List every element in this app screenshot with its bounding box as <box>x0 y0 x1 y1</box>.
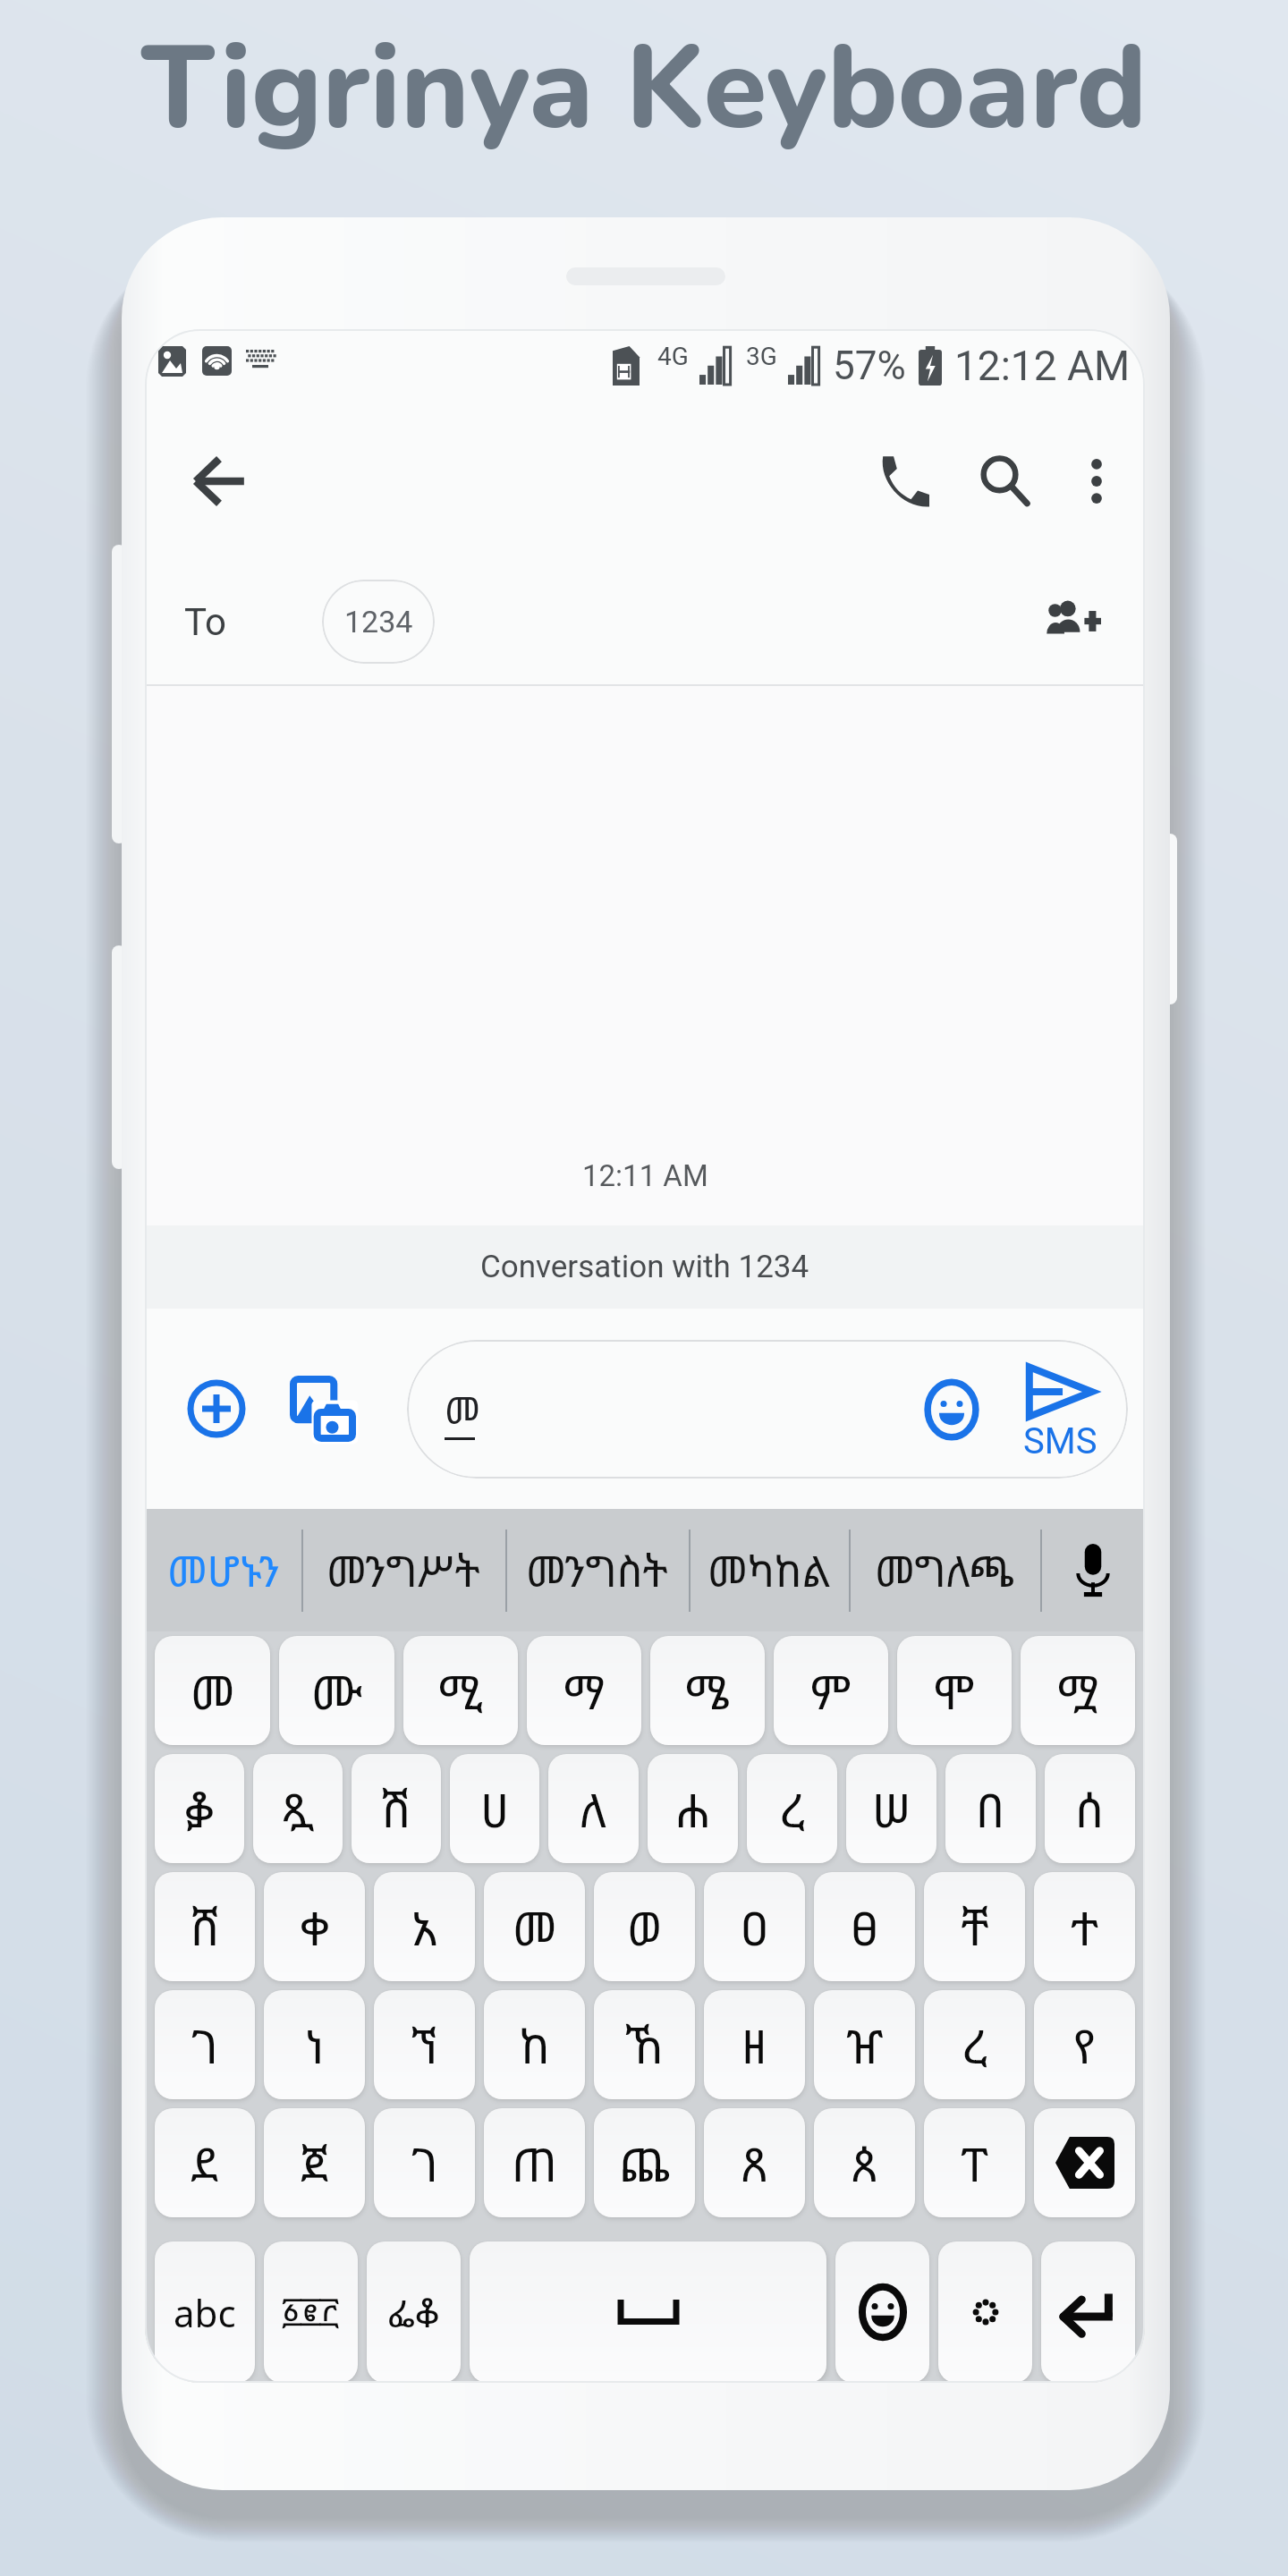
button[interactable]: ሙ <box>279 1636 394 1745</box>
button[interactable]: ሰ <box>1045 1754 1135 1863</box>
staticText: መንግሥት <box>326 1542 480 1599</box>
button[interactable]: ፐ <box>924 2108 1025 2217</box>
staticText: አ <box>411 1895 437 1959</box>
staticText: የ <box>1073 2013 1096 2077</box>
button[interactable]: ጠ <box>484 2108 585 2217</box>
button[interactable]: በ <box>945 1754 1036 1863</box>
button[interactable]: መ <box>155 1636 270 1745</box>
button[interactable]: 1234 <box>322 580 435 664</box>
button[interactable]: ቀ <box>264 1872 365 1981</box>
staticText: ለ <box>580 1777 607 1841</box>
button[interactable]: ቸ <box>924 1872 1025 1981</box>
button[interactable]: Back <box>170 432 268 530</box>
button[interactable]: መንግሥት <box>301 1509 505 1631</box>
button[interactable]: Search <box>955 431 1055 531</box>
button[interactable]: ፀ <box>814 1872 915 1981</box>
button[interactable]: ወ <box>594 1872 695 1981</box>
button[interactable]: Voice input <box>1040 1509 1145 1631</box>
staticText: ሞ <box>934 1659 975 1723</box>
staticText: መሆኑን <box>167 1542 280 1599</box>
button[interactable]: Gallery <box>280 1366 366 1452</box>
button[interactable]: መንግስት <box>505 1509 689 1631</box>
button[interactable]: Enter <box>1041 2241 1135 2383</box>
staticText: ሰ <box>1075 1777 1105 1841</box>
button[interactable]: ለ <box>548 1754 639 1863</box>
staticText: ነ <box>305 2013 325 2077</box>
button[interactable]: ደ <box>155 2108 255 2217</box>
button[interactable]: ኘ <box>374 1990 475 2099</box>
button[interactable]: ጸ <box>704 2108 805 2217</box>
button[interactable]: ኸ <box>594 1990 695 2099</box>
button[interactable]: ሐ <box>648 1754 738 1863</box>
button[interactable]: ዐ <box>704 1872 805 1981</box>
button[interactable]: ም <box>774 1636 888 1745</box>
staticText: ዘ <box>741 2013 767 2077</box>
button[interactable]: Emoji <box>912 1370 991 1449</box>
button[interactable]: ዘ <box>704 1990 805 2099</box>
button[interactable]: ጀ <box>264 2108 365 2217</box>
button[interactable]: Backspace <box>1034 2108 1135 2217</box>
button[interactable]: ገ <box>155 1990 255 2099</box>
button[interactable]: ሀ <box>450 1754 539 1863</box>
staticText: ሀ <box>480 1777 510 1841</box>
button[interactable]: ሜ <box>650 1636 765 1745</box>
staticText: ጠ <box>512 2131 557 2195</box>
button[interactable]: መሆኑን <box>145 1509 301 1631</box>
staticText: To <box>184 600 226 644</box>
button[interactable]: ጿ <box>253 1754 343 1863</box>
button[interactable]: ተ <box>1034 1872 1135 1981</box>
staticText: ቸ <box>961 1895 989 1959</box>
button[interactable]: ፌቆ <box>367 2241 461 2383</box>
button[interactable]: ረ <box>924 1990 1025 2099</box>
button[interactable]: መካከል <box>689 1509 849 1631</box>
button[interactable]: ሽ <box>352 1754 441 1863</box>
button[interactable]: ዠ <box>814 1990 915 2099</box>
button[interactable]: Space <box>470 2241 826 2383</box>
button[interactable]: ጰ <box>814 2108 915 2217</box>
button[interactable]: ሟ <box>1021 1636 1135 1745</box>
button[interactable]: ሸ <box>155 1872 255 1981</box>
staticText: መ <box>191 1659 235 1723</box>
button[interactable]: መግለጫ <box>849 1509 1040 1631</box>
staticText: ወ <box>627 1895 663 1959</box>
staticText: ገ <box>411 2131 438 2195</box>
button[interactable]: የ <box>1034 1990 1135 2099</box>
button[interactable]: abc <box>155 2241 255 2383</box>
button[interactable]: More options <box>1052 436 1141 526</box>
staticText: ከ <box>520 2013 550 2077</box>
staticText: ም <box>810 1659 852 1723</box>
button[interactable]: ሠ <box>846 1754 936 1863</box>
button[interactable]: ገ <box>374 2108 475 2217</box>
staticText: 12:11 AM <box>582 1158 708 1193</box>
button[interactable]: Send SMS <box>1008 1365 1112 1462</box>
staticText: በ <box>976 1777 1005 1841</box>
button[interactable]: መ <box>407 1340 1128 1479</box>
button[interactable]: ሞ <box>897 1636 1012 1745</box>
staticText: ማ <box>563 1659 606 1723</box>
button[interactable]: Call <box>855 431 955 531</box>
button[interactable]: ፩፪፫ <box>264 2241 358 2383</box>
staticText: abc <box>174 2287 236 2338</box>
button[interactable]: ቇ <box>155 1754 244 1863</box>
button[interactable]: ከ <box>484 1990 585 2099</box>
button[interactable]: Add recipient <box>1029 577 1118 666</box>
button[interactable]: ሚ <box>403 1636 518 1745</box>
button[interactable]: Keyboard settings <box>938 2241 1032 2383</box>
button[interactable]: ጨ <box>594 2108 695 2217</box>
staticText: ገ <box>191 2013 218 2077</box>
staticText: ኘ <box>411 2013 438 2077</box>
staticText: ጰ <box>852 2131 877 2195</box>
staticText: ሸ <box>191 1895 220 1959</box>
button[interactable]: ረ <box>747 1754 837 1863</box>
button[interactable]: Emoji <box>835 2241 929 2383</box>
button[interactable]: Add attachment <box>174 1366 259 1452</box>
button[interactable]: አ <box>374 1872 475 1981</box>
button[interactable]: ነ <box>264 1990 365 2099</box>
staticText: ተ <box>1071 1895 1099 1959</box>
staticText: ረ <box>780 1777 805 1841</box>
staticText: ፀ <box>851 1895 879 1959</box>
button[interactable]: ማ <box>527 1636 641 1745</box>
staticText: ኸ <box>625 2013 664 2077</box>
button[interactable]: መ <box>484 1872 585 1981</box>
staticText: 57% <box>833 343 906 389</box>
